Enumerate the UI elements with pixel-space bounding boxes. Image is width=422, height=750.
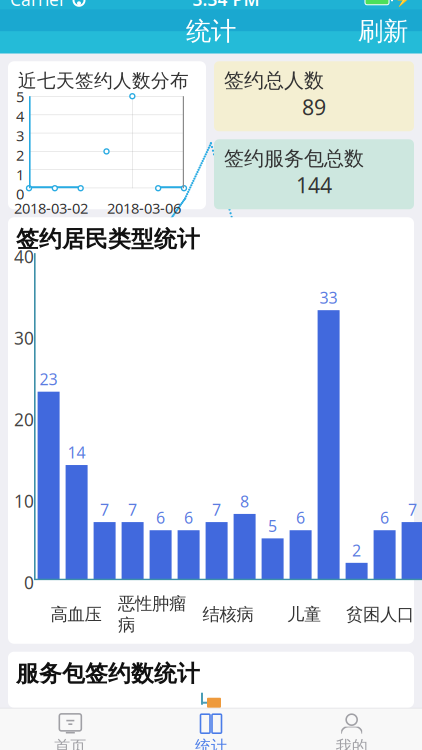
staticText: 20: [14, 408, 34, 431]
staticText: 刷新: [358, 16, 408, 47]
staticText: 7: [128, 499, 137, 520]
staticText: 5: [16, 87, 24, 106]
button[interactable]: 首页: [0, 709, 141, 750]
staticText: 144: [296, 171, 332, 199]
staticText: 8: [240, 491, 249, 512]
button[interactable]: 我的: [281, 709, 422, 750]
staticText: 首页: [54, 737, 86, 750]
staticText: 89: [302, 93, 326, 121]
staticText: 2: [352, 540, 361, 561]
staticText: 恶性肿瘤病: [118, 593, 186, 636]
staticText: 3:34 PM: [192, 0, 259, 11]
staticText: 10: [14, 490, 34, 513]
staticText: 5: [268, 515, 277, 536]
button[interactable]: 统计: [141, 709, 281, 750]
staticText: 2018-03-02: [14, 198, 88, 218]
staticText: 贫困人口: [346, 604, 414, 625]
staticText: 签约服务包总数: [224, 146, 364, 171]
staticText: 7: [100, 499, 109, 520]
staticText: 6: [380, 507, 389, 528]
staticText: 40: [14, 245, 34, 268]
staticText: 6: [156, 507, 165, 528]
staticText: 统计: [186, 16, 236, 47]
staticText: 6: [184, 507, 193, 528]
staticText: 高血压: [50, 604, 101, 625]
staticText: 近七天签约人数分布: [18, 69, 189, 92]
staticText: 2: [16, 145, 24, 165]
staticText: Carrier: [10, 0, 66, 11]
staticText: 3: [16, 126, 24, 145]
staticText: 结核病: [202, 604, 253, 625]
staticText: 33: [320, 287, 338, 308]
staticText: 1: [16, 165, 24, 184]
staticText: 7: [212, 499, 221, 520]
staticText: 0: [24, 571, 34, 594]
button[interactable]: 刷新: [344, 8, 422, 55]
staticText: 0: [16, 184, 24, 204]
staticText: 14: [68, 442, 86, 463]
staticText: 我的: [336, 737, 368, 750]
staticText: 30: [14, 327, 34, 350]
staticText: 23: [40, 368, 58, 390]
staticText: 签约居民类型统计: [16, 225, 200, 253]
staticText: 4: [16, 106, 24, 126]
staticText: 6: [296, 507, 305, 528]
staticText: 2018-03-06: [107, 198, 181, 218]
staticText: 统计: [195, 737, 227, 750]
staticText: 儿童: [287, 604, 321, 625]
staticText: 签约总人数: [224, 68, 324, 93]
staticText: 服务包签约数统计: [16, 660, 200, 687]
staticText: 7: [408, 499, 417, 520]
staticText: ⚡: [395, 0, 412, 7]
